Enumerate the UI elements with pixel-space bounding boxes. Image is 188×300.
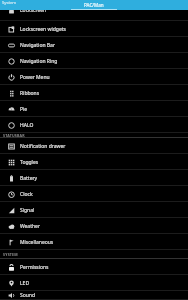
button[interactable]: Toggles xyxy=(0,154,188,170)
button[interactable]: Battery xyxy=(0,170,188,186)
staticText: Permissions xyxy=(20,264,49,271)
button[interactable]: Navigation Bar xyxy=(0,37,188,53)
button[interactable]: System xyxy=(0,0,188,10)
staticText: SYSTEM xyxy=(3,252,18,257)
staticText: Pie xyxy=(20,106,28,113)
staticText: Lockscreen widgets xyxy=(20,26,66,33)
staticText: LED xyxy=(20,280,30,287)
staticText: Navigation Ring xyxy=(20,58,58,65)
staticText: Navigation Bar xyxy=(20,42,55,49)
button[interactable]: Power Menu xyxy=(0,69,188,85)
button[interactable]: Sound xyxy=(0,291,188,300)
button[interactable]: LED xyxy=(0,275,188,291)
staticText: Battery xyxy=(20,175,38,182)
staticText: Lockscreen xyxy=(20,10,47,14)
staticText: System xyxy=(2,0,17,6)
staticText: HALO xyxy=(20,122,34,129)
button[interactable]: Notification drawer xyxy=(0,138,188,154)
staticText: Toggles xyxy=(20,159,39,166)
staticText: Sound xyxy=(20,292,36,299)
button[interactable]: Ribbons xyxy=(0,85,188,101)
staticText: Signal xyxy=(20,207,35,214)
button[interactable]: HALO xyxy=(0,117,188,133)
button[interactable]: Miscellaneous xyxy=(0,234,188,250)
staticText: Clock xyxy=(20,191,33,198)
button[interactable]: Signal xyxy=(0,202,188,218)
staticText: STATUSBAR xyxy=(3,133,25,138)
staticText: Power Menu xyxy=(20,74,50,81)
staticText: Weather xyxy=(20,223,40,230)
staticText: Notification drawer xyxy=(20,143,66,150)
button[interactable]: Pie xyxy=(0,101,188,117)
staticText: Ribbons xyxy=(20,90,40,97)
staticText: PAC/Man xyxy=(84,2,104,8)
button[interactable]: Navigation Ring xyxy=(0,53,188,69)
button[interactable]: Permissions xyxy=(0,259,188,275)
staticText: Miscellaneous xyxy=(20,239,54,246)
button[interactable]: Lockscreen xyxy=(0,10,188,21)
button[interactable]: Weather xyxy=(0,218,188,234)
button[interactable]: Lockscreen widgets xyxy=(0,21,188,37)
button[interactable]: Clock xyxy=(0,186,188,202)
